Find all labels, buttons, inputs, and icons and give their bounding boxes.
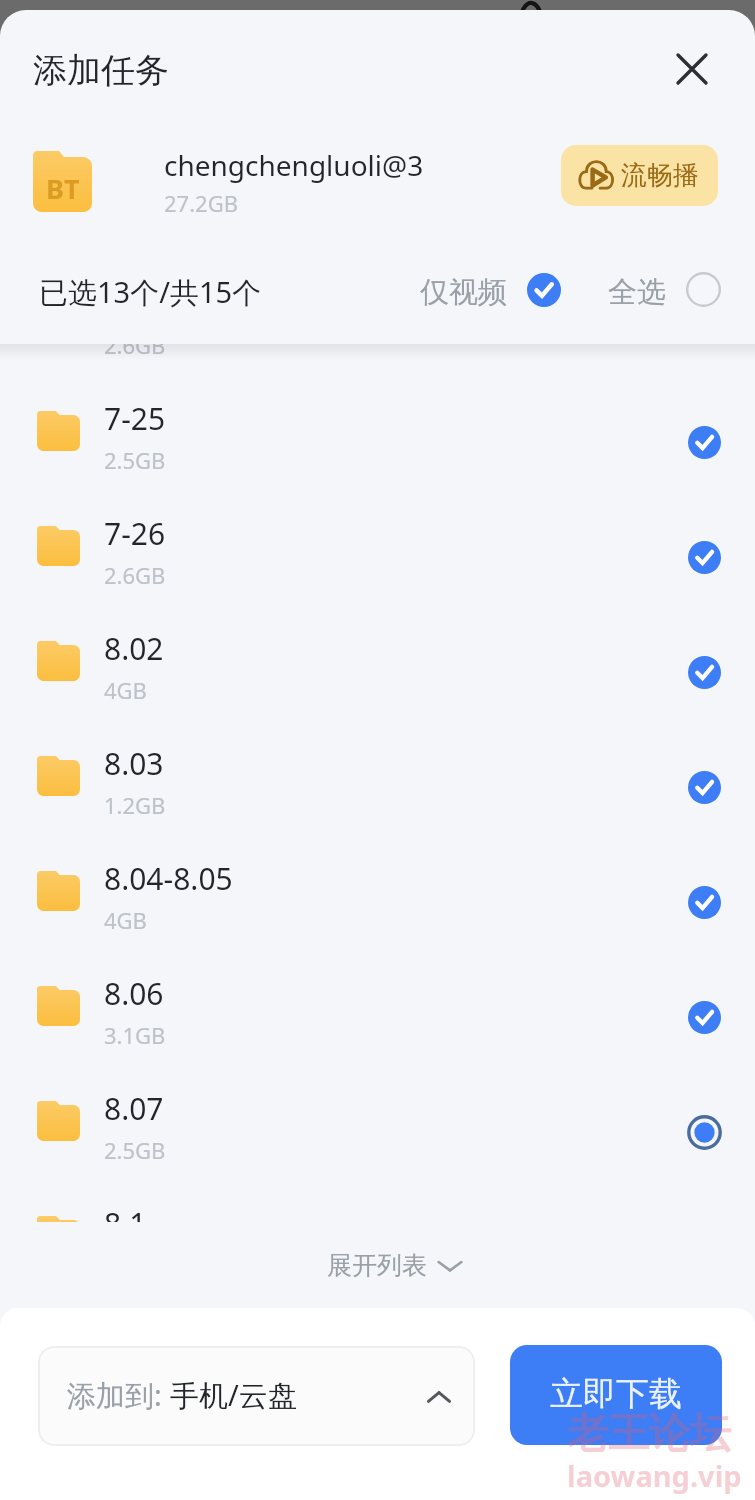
staticText: 立即下载 (550, 1373, 682, 1415)
staticText: 老王论坛 (567, 1408, 731, 1460)
staticText: 7-26 (104, 513, 166, 554)
staticText: 4GB (104, 905, 147, 935)
button[interactable]: 全选 (598, 263, 731, 316)
staticText: 2.5GB (104, 445, 166, 475)
button[interactable]: Close (664, 41, 720, 97)
button[interactable]: 仅视频 (410, 263, 571, 316)
staticText: laowang.vip (567, 1456, 742, 1495)
staticText: 全选 (608, 274, 666, 311)
staticText: 8.03 (104, 743, 164, 784)
button[interactable]: 8.04-8.05 (0, 834, 755, 949)
staticText: 7-25 (104, 398, 166, 439)
button[interactable]: 8.1 (0, 1179, 755, 1222)
staticText: 3.1GB (104, 1020, 166, 1050)
button[interactable]: 8.07 (0, 1064, 755, 1179)
staticText: 1.2GB (104, 790, 166, 820)
staticText: 27.2GB (164, 188, 238, 218)
button[interactable]: 立即下载 (510, 1345, 722, 1445)
button[interactable]: 8.03 (0, 719, 755, 834)
staticText: 手机/云盘 (170, 1375, 297, 1415)
staticText: 添加任务 (33, 49, 169, 92)
staticText: BT (46, 170, 80, 207)
staticText: 4GB (104, 675, 147, 705)
staticText: 8.06 (104, 973, 164, 1014)
staticText: 8.1 (104, 1203, 147, 1222)
button[interactable]: 7-24 (0, 344, 755, 374)
button[interactable]: 7-25 (0, 374, 755, 489)
button[interactable]: 展开列表 (315, 1240, 475, 1291)
button[interactable]: 7-26 (0, 489, 755, 604)
button[interactable]: 流畅播 (561, 145, 718, 206)
staticText: chengchengluoli@3 (164, 146, 424, 184)
staticText: 添加到: (67, 1375, 170, 1415)
staticText: 展开列表 (327, 1250, 427, 1281)
staticText: 已选13个/共15个 (39, 272, 262, 312)
staticText: 2.5GB (104, 1135, 166, 1165)
staticText: 2.6GB (104, 560, 166, 590)
staticText: 8.04-8.05 (104, 858, 233, 899)
staticText: 仅视频 (420, 274, 507, 311)
button[interactable]: 8.02 (0, 604, 755, 719)
staticText: 2.6GB (104, 344, 166, 360)
staticText: 8.07 (104, 1088, 164, 1129)
button[interactable]: 8.06 (0, 949, 755, 1064)
staticText: 流畅播 (621, 159, 699, 192)
staticText: 8.02 (104, 628, 164, 669)
button[interactable]: 添加到: (38, 1346, 475, 1446)
